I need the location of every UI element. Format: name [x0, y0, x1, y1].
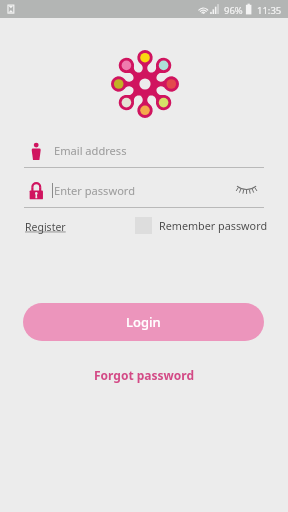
- staticText: Enter password: [54, 183, 136, 198]
- button[interactable]: Register: [22, 218, 69, 236]
- staticText: Email address: [54, 143, 127, 158]
- button[interactable]: Show password: [234, 180, 260, 206]
- staticText: 96%: [224, 4, 243, 17]
- staticText: Forgot password: [94, 367, 195, 383]
- button[interactable]: Forgot password: [88, 364, 201, 386]
- staticText: Remember password: [159, 218, 268, 233]
- button[interactable]: Login: [23, 303, 264, 341]
- button[interactable]: Remember password: [135, 217, 268, 234]
- staticText: 11:35: [257, 4, 282, 17]
- staticText: Login: [126, 313, 161, 331]
- staticText: Register: [25, 220, 66, 234]
